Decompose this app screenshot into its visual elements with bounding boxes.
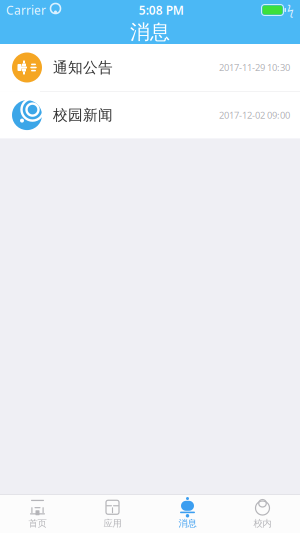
staticText: 2017-12-02 09:00 bbox=[219, 109, 290, 121]
button[interactable]: 应用 bbox=[75, 495, 150, 533]
staticText: ϟ bbox=[287, 2, 294, 18]
staticText: 5:08 PM bbox=[139, 2, 184, 18]
staticText: Carrier bbox=[6, 2, 46, 18]
button[interactable]: 消息 bbox=[150, 495, 225, 533]
staticText: 通知公告 bbox=[53, 58, 113, 76]
button[interactable]: 校内 bbox=[225, 495, 300, 533]
button[interactable]: 通知公告 bbox=[0, 44, 300, 92]
button[interactable]: 校园新闻 bbox=[0, 92, 300, 139]
staticText: 校内 bbox=[253, 518, 271, 529]
staticText: 消息 bbox=[178, 518, 196, 529]
staticText: 校园新闻 bbox=[53, 106, 113, 124]
staticText: 应用 bbox=[103, 518, 121, 529]
staticText: 2017-11-29 10:30 bbox=[219, 61, 290, 74]
staticText: 首页 bbox=[28, 518, 46, 529]
button[interactable]: 首页 bbox=[0, 495, 75, 533]
staticText: 消息 bbox=[130, 20, 170, 44]
